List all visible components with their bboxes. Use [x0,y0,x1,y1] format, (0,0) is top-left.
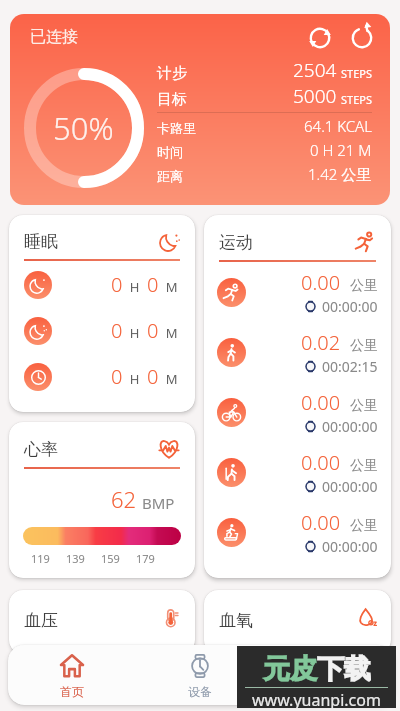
staticText: 64.1 KCAL [304,116,372,136]
staticText: 下载 [317,652,371,686]
staticText: 卡路里 [157,120,196,136]
staticText: 血氧 [219,610,253,631]
button[interactable]: 血压 [9,590,195,654]
staticText: M [159,370,178,388]
staticText: 00:02:15 [322,357,378,376]
staticText: 公里 [350,517,378,535]
staticText: 0 [147,271,159,298]
staticText: 心率 [24,439,58,460]
staticText: 血压 [24,610,58,631]
staticText: 00:00:00 [322,537,378,556]
button[interactable]: Refresh [348,24,376,52]
staticText: 设备 [188,684,212,699]
button[interactable]: 睡眠 [9,215,195,412]
button[interactable]: 心率 [9,422,195,578]
staticText: 0.00 [301,449,341,476]
staticText: M [159,324,178,342]
staticText: 1.42 公里 [308,164,372,184]
button[interactable]: 血氧 [204,590,391,654]
staticText: BMP [142,493,175,513]
button[interactable]: 首页 [8,645,136,705]
staticText: 元皮 [263,652,317,686]
staticText: 139 [66,551,85,566]
staticText: 2504 [293,57,337,83]
staticText: 0.00 [301,269,341,296]
staticText: 计步 [157,64,187,83]
staticText: 睡眠 [24,231,58,252]
button[interactable]: 设备 [136,645,264,705]
staticText: 0 H 21 M [310,140,372,160]
staticText: 0 [111,317,123,344]
staticText: 首页 [60,684,84,699]
staticText: 0 [111,363,123,390]
staticText: 0 [111,271,123,298]
staticText: 179 [136,551,155,566]
staticText: 50% [53,107,114,149]
staticText: 公里 [350,457,378,475]
staticText: H [123,370,147,388]
staticText: H [123,324,147,342]
staticText: 5000 [293,83,337,109]
staticText: www.yuanpi.com [252,689,381,708]
staticText: STEPS [341,92,372,107]
staticText: 目标 [157,90,187,109]
staticText: 0 [147,363,159,390]
staticText: 0.00 [301,389,341,416]
staticText: 00:00:00 [322,297,378,316]
staticText: 00:00:00 [322,417,378,436]
staticText: 0.00 [301,509,341,536]
button[interactable]: 我的 [264,645,392,705]
staticText: 62 [111,484,137,514]
staticText: 我的 [316,684,340,699]
staticText: 公里 [350,337,378,355]
staticText: 已连接 [30,27,78,47]
staticText: 运动 [219,232,253,253]
staticText: STEPS [341,66,372,81]
staticText: 时间 [157,144,183,160]
staticText: 00:00:00 [322,477,378,496]
staticText: 159 [101,551,120,566]
staticText: 公里 [350,277,378,295]
staticText: H [123,278,147,296]
staticText: M [159,278,178,296]
staticText: 0.02 [301,329,341,356]
button[interactable]: Sync [306,24,334,52]
staticText: 公里 [350,397,378,415]
staticText: 0 [147,317,159,344]
staticText: 119 [31,551,50,566]
staticText: 距离 [157,168,183,184]
button[interactable]: 运动 [204,215,391,578]
